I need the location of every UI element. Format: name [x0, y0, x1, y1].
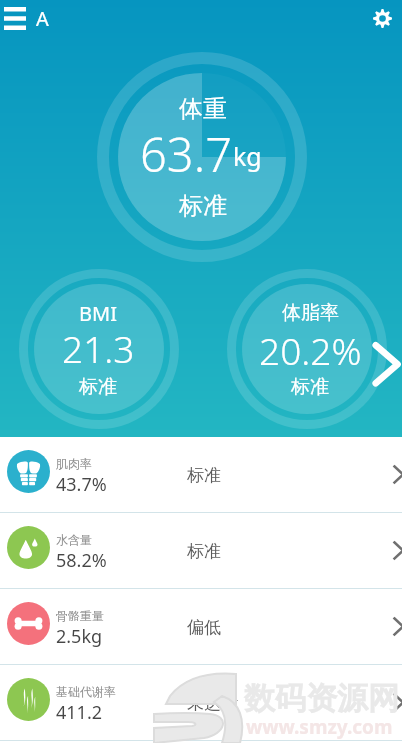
staticText: 未达标 [187, 693, 238, 714]
staticText: 骨骼重量 [56, 608, 104, 623]
button[interactable]: 水含量 [0, 513, 402, 588]
staticText: 标准 [79, 375, 117, 399]
staticText: A [36, 5, 49, 32]
staticText: 肌肉率 [56, 456, 92, 471]
staticText: kg [233, 139, 262, 173]
staticText: BMI [79, 300, 117, 327]
staticText: 体脂率 [282, 301, 339, 325]
button[interactable]: 骨骼重量 [0, 589, 402, 664]
staticText: 43.7% [56, 472, 107, 497]
staticText: 水含量 [56, 532, 92, 547]
button[interactable]: Settings [365, 0, 400, 37]
staticText: 411.2 [56, 700, 103, 725]
staticText: 标准 [291, 375, 329, 399]
staticText: 63.7 [140, 122, 232, 186]
button[interactable]: Menu [0, 0, 30, 37]
button[interactable]: 基础代谢率 [0, 665, 402, 740]
staticText: 数码资源网 [244, 679, 399, 718]
staticText: 基础代谢率 [56, 684, 116, 699]
staticText: 58.2% [56, 548, 107, 573]
staticText: 标准 [179, 191, 227, 221]
button[interactable]: Next [368, 336, 402, 392]
staticText: 21.3 [62, 323, 135, 373]
staticText: 偏低 [187, 617, 221, 638]
button[interactable]: 肌肉率 [0, 437, 402, 512]
staticText: 标准 [187, 541, 221, 562]
staticText: 2.5kg [56, 624, 103, 649]
staticText: 标准 [187, 465, 221, 486]
staticText: 体重 [179, 94, 227, 124]
staticText: 20.2% [259, 325, 362, 375]
staticText: www.smzy.com [246, 714, 393, 740]
